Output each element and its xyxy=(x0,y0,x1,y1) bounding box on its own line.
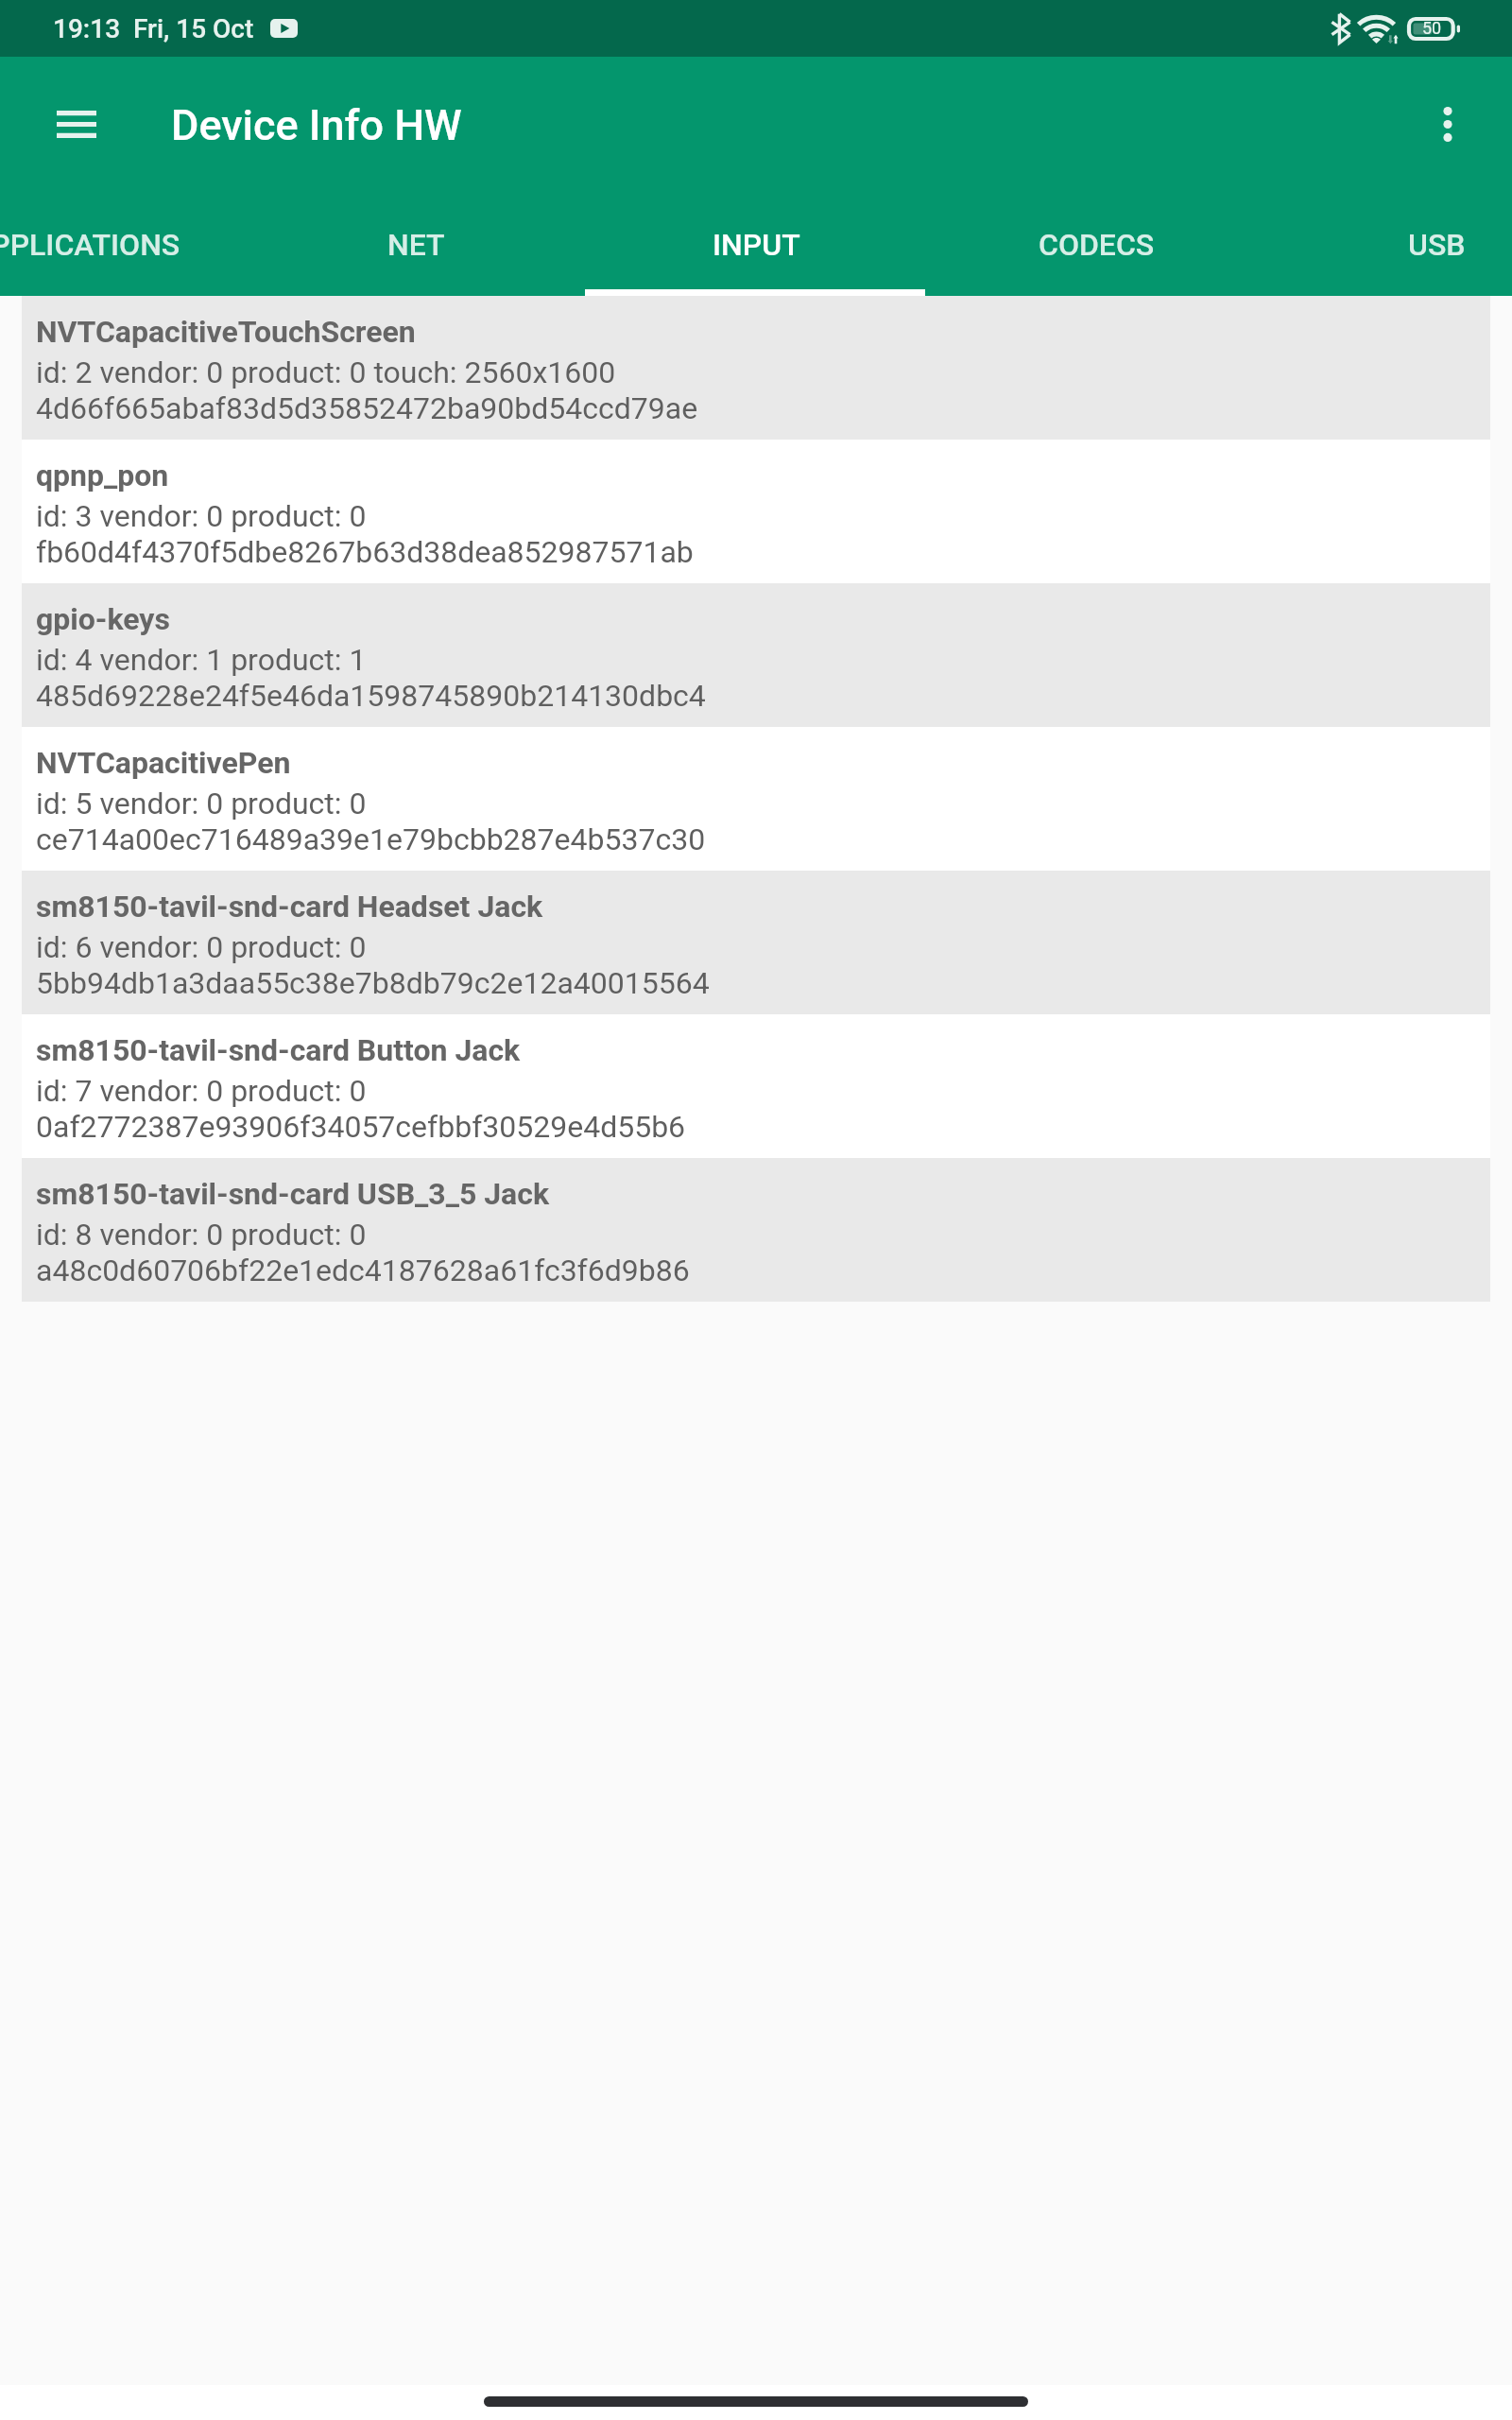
staticText: id: 7 vendor: 0 product: 0 xyxy=(36,1073,367,1109)
staticText: id: 4 vendor: 1 product: 1 xyxy=(36,642,367,678)
staticText: NET xyxy=(387,227,445,263)
button[interactable]: qpnp_pon xyxy=(22,440,1490,583)
staticText: 50 xyxy=(1422,18,1442,38)
staticText: USB xyxy=(1408,227,1466,263)
staticText: a48c0d60706bf22e1edc4187628a61fc3f6d9b86 xyxy=(36,1253,690,1288)
button[interactable]: APPLICATIONS xyxy=(0,199,246,296)
staticText: gpio-keys xyxy=(36,601,170,637)
button[interactable]: More options xyxy=(1391,67,1504,181)
staticText: 5bb94db1a3daa55c38e7b8db79c2e12a40015564 xyxy=(36,965,710,1001)
staticText: INPUT xyxy=(713,227,800,263)
staticText: NVTCapacitiveTouchScreen xyxy=(36,314,416,350)
button[interactable]: Open navigation drawer xyxy=(20,67,133,181)
button[interactable]: sm8150-tavil-snd-card USB_3_5 Jack xyxy=(22,1158,1490,1302)
staticText: id: 2 vendor: 0 product: 0 touch: 2560x1… xyxy=(36,354,616,390)
button[interactable]: NVTCapacitiveTouchScreen xyxy=(22,296,1490,440)
button[interactable]: NET xyxy=(246,199,586,296)
button[interactable]: INPUT xyxy=(586,199,926,296)
staticText: 485d69228e24f5e46da1598745890b214130dbc4 xyxy=(36,678,706,714)
staticText: id: 3 vendor: 0 product: 0 xyxy=(36,498,367,534)
staticText: 4d66f665abaf83d5d35852472ba90bd54ccd79ae xyxy=(36,390,698,426)
button[interactable]: USB xyxy=(1266,199,1512,296)
staticText: 0af2772387e93906f34057cefbbf30529e4d55b6 xyxy=(36,1109,686,1145)
staticText: NVTCapacitivePen xyxy=(36,745,291,781)
staticText: id: 6 vendor: 0 product: 0 xyxy=(36,929,367,965)
staticText: sm8150-tavil-snd-card Button Jack xyxy=(36,1032,521,1068)
staticText: ce714a00ec716489a39e1e79bcbb287e4b537c30 xyxy=(36,821,706,857)
button[interactable]: CODECS xyxy=(926,199,1266,296)
staticText: sm8150-tavil-snd-card USB_3_5 Jack xyxy=(36,1176,549,1212)
staticText: qpnp_pon xyxy=(36,458,169,493)
staticText: fb60d4f4370f5dbe8267b63d38dea852987571ab xyxy=(36,534,694,570)
staticText: CODECS xyxy=(1039,227,1155,263)
staticText: id: 8 vendor: 0 product: 0 xyxy=(36,1217,367,1253)
staticText: APPLICATIONS xyxy=(0,227,180,263)
staticText: Device Info HW xyxy=(171,100,462,150)
button[interactable]: NVTCapacitivePen xyxy=(22,727,1490,871)
staticText: id: 5 vendor: 0 product: 0 xyxy=(36,786,367,821)
staticText: sm8150-tavil-snd-card Headset Jack xyxy=(36,889,543,925)
staticText: 19:13 Fri, 15 Oct xyxy=(53,13,254,44)
button[interactable]: gpio-keys xyxy=(22,583,1490,727)
button[interactable]: sm8150-tavil-snd-card Button Jack xyxy=(22,1014,1490,1158)
button[interactable]: sm8150-tavil-snd-card Headset Jack xyxy=(22,871,1490,1014)
